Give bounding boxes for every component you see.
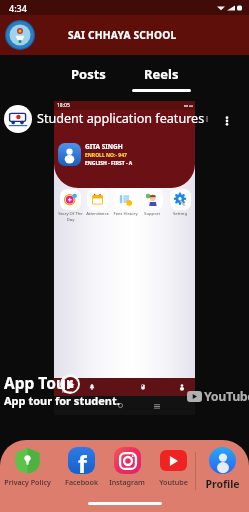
staticText: App Tour bbox=[4, 372, 73, 393]
staticText: ENGLISH - FIRST - A bbox=[85, 160, 133, 167]
staticText: Student application features bbox=[37, 110, 205, 127]
staticText: Story Of The Day bbox=[58, 211, 83, 222]
button[interactable]: Instagram bbox=[102, 447, 152, 487]
staticText: Instagram bbox=[109, 477, 145, 487]
button[interactable]: Posts bbox=[58, 55, 118, 101]
staticText: Reels bbox=[144, 65, 179, 83]
button[interactable]: Story Of The Day bbox=[57, 189, 83, 222]
button[interactable]: More options bbox=[218, 112, 236, 130]
button[interactable]: Youtube bbox=[148, 447, 198, 487]
staticText: App tour for student. bbox=[4, 393, 120, 408]
staticText: Posts bbox=[71, 65, 106, 83]
staticText: 18:05 bbox=[57, 102, 70, 109]
staticText: GITA SINGH bbox=[85, 142, 123, 151]
button[interactable]: Support bbox=[139, 189, 165, 217]
staticText: ENROLL NO:- 947 bbox=[85, 152, 127, 159]
staticText: 4:34 bbox=[9, 2, 27, 14]
staticText: Support bbox=[144, 211, 160, 217]
button[interactable]: Facebook bbox=[56, 447, 106, 487]
staticText: f bbox=[78, 448, 87, 474]
button[interactable]: Profile bbox=[197, 447, 247, 491]
staticText: Fees History bbox=[113, 211, 138, 217]
staticText: Privacy Policy bbox=[4, 477, 51, 487]
staticText: Setting bbox=[173, 211, 187, 217]
button[interactable]: Privacy Policy bbox=[2, 447, 52, 487]
staticText: SAI CHHAYA SCHOOL bbox=[68, 28, 177, 42]
staticText: Youtube bbox=[159, 477, 188, 487]
staticText: Profile bbox=[205, 477, 240, 491]
button[interactable]: Attendance bbox=[84, 189, 110, 217]
button[interactable]: Channel avatar bbox=[4, 105, 32, 133]
staticText: Facebook bbox=[65, 477, 98, 487]
button[interactable]: School logo bbox=[5, 20, 35, 50]
staticText: Home bbox=[62, 389, 72, 394]
button[interactable]: Setting bbox=[167, 189, 193, 217]
staticText: YouTube bbox=[204, 388, 249, 405]
button[interactable]: Reels bbox=[131, 55, 191, 101]
button[interactable]: Fees History bbox=[112, 189, 138, 217]
staticText: Attendance bbox=[86, 211, 109, 217]
